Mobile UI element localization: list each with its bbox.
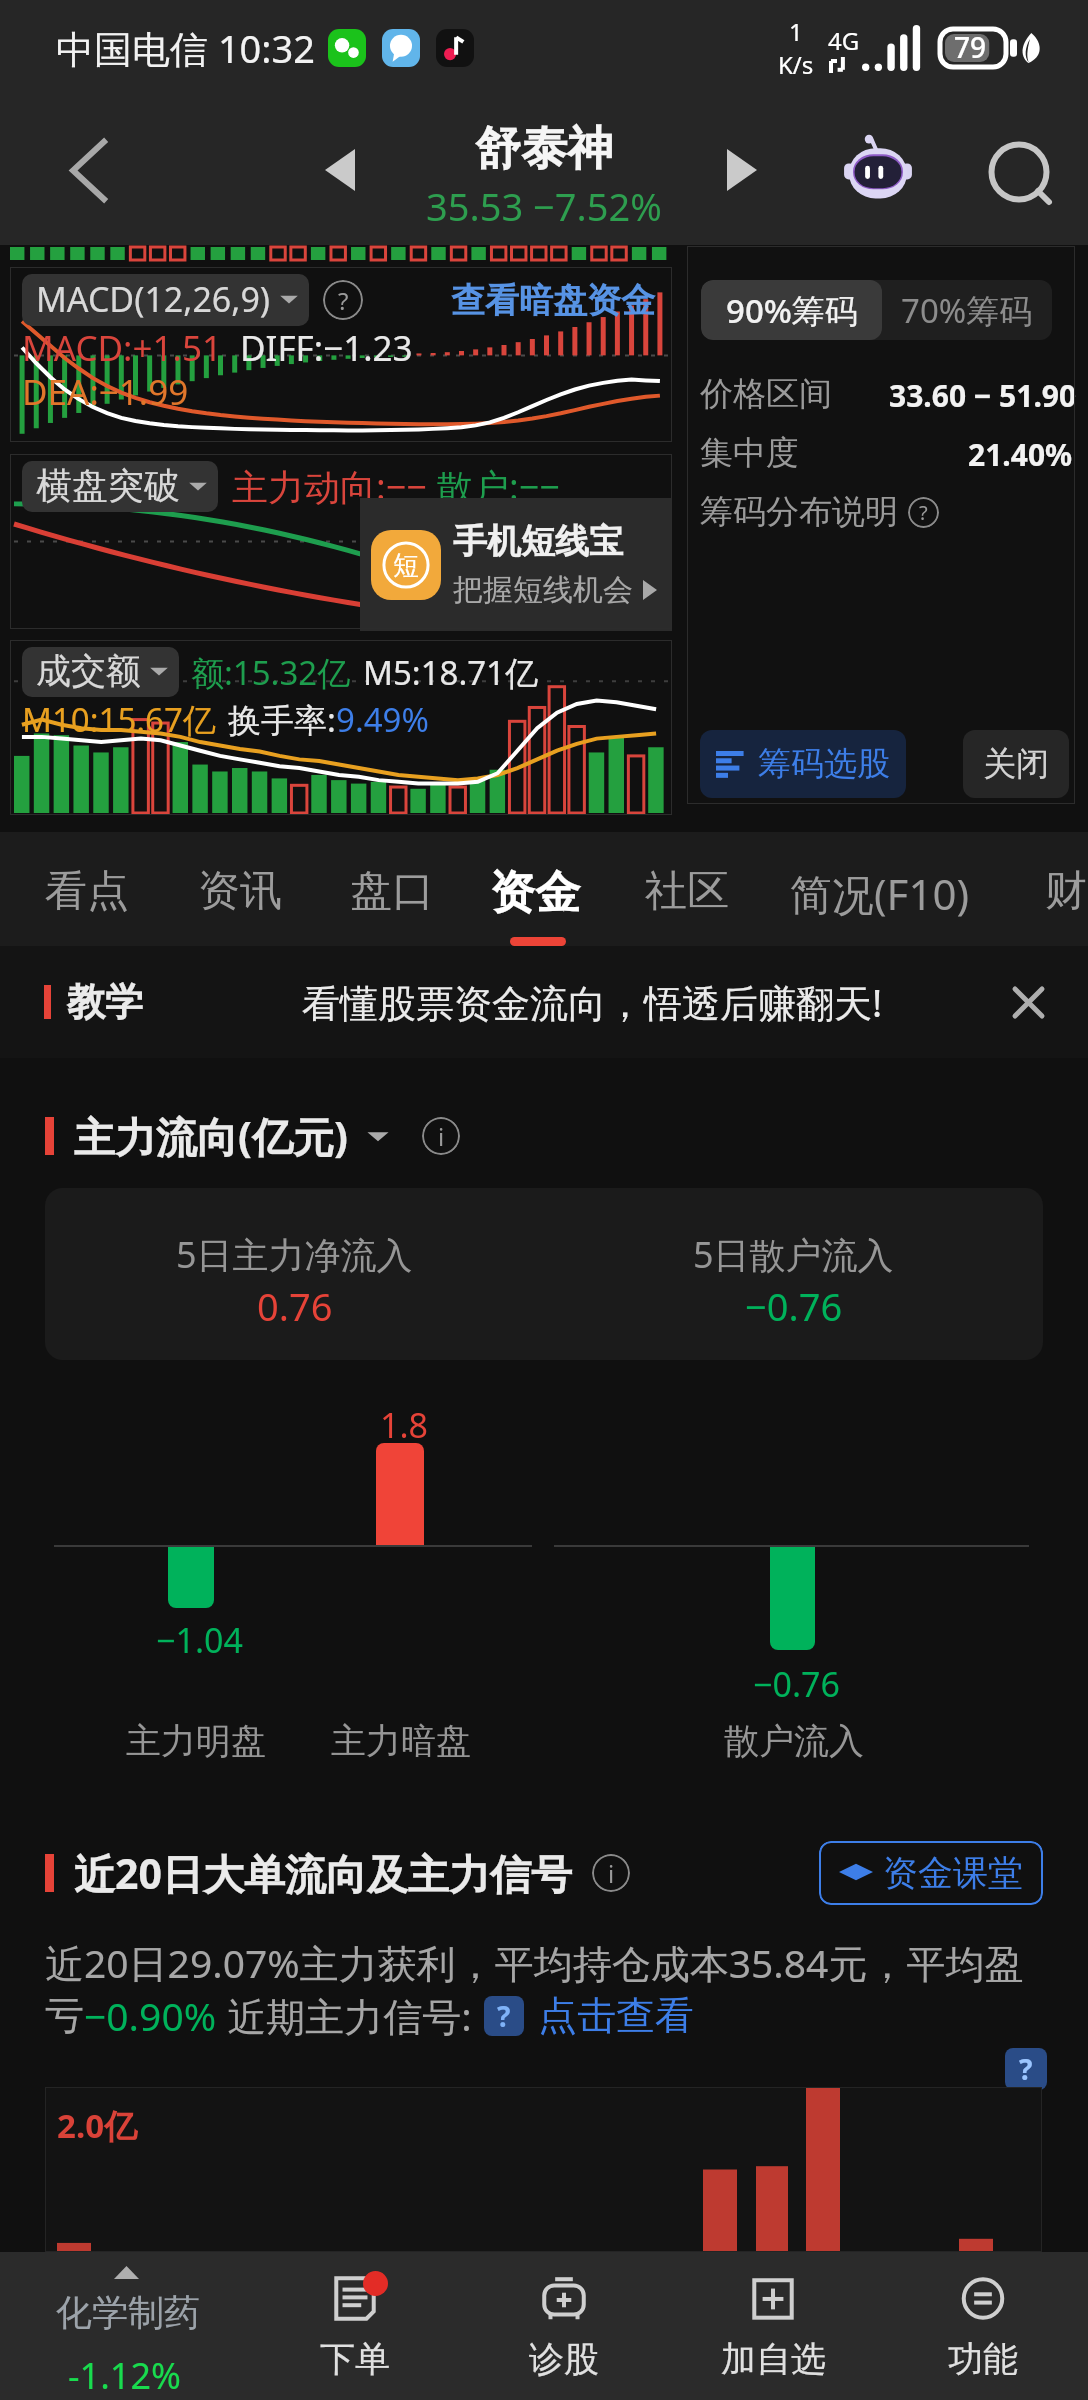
button[interactable]: Previous stock	[290, 120, 390, 220]
staticText: DEA:−1.99	[22, 368, 189, 416]
staticText: 关闭	[983, 743, 1049, 785]
staticText: 近20日29.07%主力获利，平均持仓成本35.84元，平均盈	[45, 1936, 1024, 1989]
staticText: 舒泰神	[475, 120, 613, 178]
staticText: 主力流向(亿元)	[74, 1108, 348, 1164]
button[interactable]: 90%筹码	[701, 280, 882, 340]
button[interactable]: 化学制药	[0, 2252, 250, 2400]
staticText: 主力明盘	[126, 1719, 266, 1763]
staticText: 79	[954, 28, 987, 66]
staticText: 社区	[645, 865, 729, 918]
button[interactable]: AI assistant	[818, 108, 938, 228]
staticText: 看懂股票资金流向，悟透后赚翻天!	[302, 976, 883, 1028]
staticText: 2.0亿	[57, 2103, 138, 2148]
staticText: ?	[919, 499, 928, 526]
staticText: 33.60 − 51.90	[889, 375, 1077, 416]
staticText: i	[608, 1857, 615, 1890]
staticText: 4G	[828, 24, 860, 57]
button[interactable]: 财	[1027, 832, 1088, 946]
staticText: K/s	[778, 48, 814, 81]
button[interactable]: 简况(F10)	[772, 832, 988, 946]
staticText: ?	[497, 1997, 511, 2035]
button[interactable]: Close tip	[988, 962, 1068, 1042]
staticText: −0.76	[753, 1661, 840, 1707]
staticText: 1	[789, 15, 803, 48]
staticText: 化学制药	[56, 2290, 200, 2335]
staticText: MACD(12,26,9)	[36, 276, 271, 322]
staticText: 横盘突破	[36, 463, 180, 508]
staticText: 把握短线机会	[453, 571, 633, 609]
button[interactable]: 下单	[250, 2252, 459, 2400]
staticText: i	[438, 1120, 445, 1153]
button[interactable]: 看点	[27, 832, 147, 946]
staticText: 资金	[490, 865, 580, 922]
staticText: 手机短线宝	[453, 520, 623, 563]
staticText: 财	[1045, 865, 1087, 918]
staticText: 90%筹码	[726, 288, 858, 333]
button[interactable]: 资金课堂	[819, 1841, 1043, 1905]
staticText: 主力动向:−−	[232, 462, 427, 511]
button[interactable]: 70%筹码	[882, 280, 1052, 340]
staticText: 短	[393, 549, 419, 582]
staticText: M10:15.67亿	[22, 697, 216, 742]
button[interactable]: Next stock	[692, 120, 792, 220]
staticText: −0.76	[745, 1280, 843, 1332]
staticText: 散户:−−	[437, 462, 560, 511]
staticText: 诊股	[529, 2337, 599, 2381]
staticText: ?	[1019, 2050, 1033, 2088]
staticText: 资讯	[198, 865, 282, 918]
staticText: 主力暗盘	[331, 1719, 471, 1763]
staticText: 亏	[45, 1991, 84, 2040]
button[interactable]: Search	[964, 120, 1074, 230]
button[interactable]: 社区	[627, 832, 747, 946]
staticText: MACD:+1.51	[22, 324, 222, 372]
staticText: 9.49%	[336, 697, 429, 742]
staticText: DIFF:−1.23	[240, 324, 413, 372]
button[interactable]: 功能	[878, 2252, 1088, 2400]
staticText: 查看暗盘资金	[451, 279, 655, 322]
staticText: M5:18.71亿	[363, 650, 538, 695]
staticText: 70%筹码	[901, 288, 1033, 333]
staticText: 盘口	[350, 865, 434, 918]
staticText: 额:15.32亿	[191, 650, 351, 695]
staticText: 5日主力净流入	[176, 1230, 413, 1279]
staticText: -1.12%	[68, 2351, 181, 2400]
staticText: −0.90%	[84, 1989, 217, 2042]
staticText: 近20日大单流向及主力信号	[74, 1845, 572, 1901]
staticText: 点击查看	[538, 1991, 694, 2040]
button[interactable]: 成交额	[22, 647, 179, 697]
button[interactable]: 筹码选股	[700, 730, 906, 798]
staticText: 中国电信 10:32	[56, 22, 316, 74]
staticText: 看点	[45, 865, 129, 918]
staticText: 教学	[67, 978, 143, 1026]
button[interactable]: MACD(12,26,9)	[22, 274, 309, 326]
staticText: 1.8	[380, 1402, 429, 1448]
button[interactable]: 横盘突破	[22, 461, 218, 512]
staticText: 35.53 −7.52%	[426, 180, 662, 232]
staticText: 资金课堂	[883, 1851, 1023, 1895]
staticText: 价格区间	[700, 373, 832, 415]
button[interactable]: 短	[360, 498, 672, 631]
staticText: 21.40%	[968, 434, 1073, 475]
button[interactable]: 关闭	[963, 730, 1069, 798]
button[interactable]: 资金	[472, 832, 598, 946]
staticText: ?	[338, 284, 349, 317]
staticText: 简况(F10)	[790, 865, 970, 922]
staticText: 0.76	[257, 1280, 333, 1332]
staticText: 换手率:	[228, 697, 336, 742]
staticText: 成交额	[36, 649, 141, 693]
staticText: 加自选	[721, 2337, 826, 2381]
button[interactable]: 诊股	[459, 2252, 668, 2400]
button[interactable]: 资讯	[180, 832, 300, 946]
staticText: 近期主力信号:	[217, 1989, 472, 2042]
button[interactable]: Help	[1005, 2048, 1047, 2090]
button[interactable]: 盘口	[332, 832, 452, 946]
staticText: 散户流入	[724, 1719, 864, 1763]
button[interactable]: 加自选	[668, 2252, 878, 2400]
staticText: 5日散户流入	[693, 1230, 894, 1279]
staticText: 集中度	[700, 432, 799, 474]
staticText: 下单	[320, 2337, 390, 2381]
staticText: 筹码分布说明	[700, 491, 898, 533]
staticText: −1.04	[156, 1617, 243, 1663]
button[interactable]: Back	[28, 110, 148, 230]
staticText: 功能	[948, 2337, 1018, 2381]
